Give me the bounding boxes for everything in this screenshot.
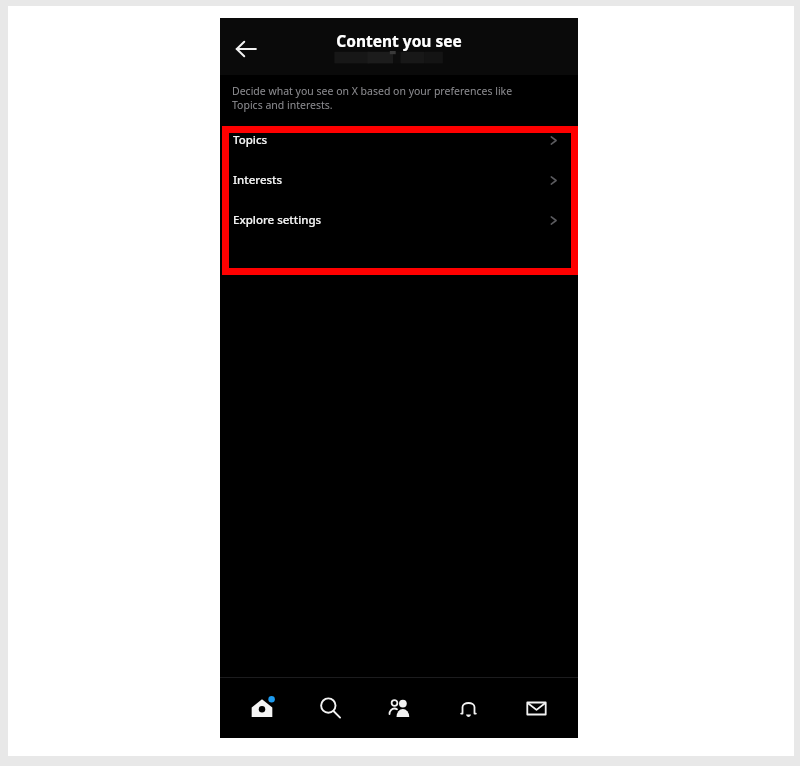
button[interactable]: Explore settings — [220, 200, 578, 240]
button[interactable]: Home — [235, 683, 289, 733]
button[interactable]: Interests — [220, 160, 578, 200]
button[interactable]: Topics — [220, 120, 578, 160]
staticText: Content you see — [336, 30, 462, 51]
staticText: Topics and interests. — [232, 98, 333, 112]
button[interactable]: Communities — [372, 683, 426, 733]
staticText: Interests — [233, 172, 283, 188]
button[interactable]: Search — [303, 683, 357, 733]
staticText: Decide what you see on X based on your p… — [232, 84, 513, 98]
staticText: Topics — [233, 132, 268, 148]
button[interactable]: Messages — [509, 683, 563, 733]
staticText: Explore settings — [233, 212, 322, 228]
button[interactable]: Notifications — [441, 683, 495, 733]
button[interactable]: Back — [225, 28, 267, 70]
